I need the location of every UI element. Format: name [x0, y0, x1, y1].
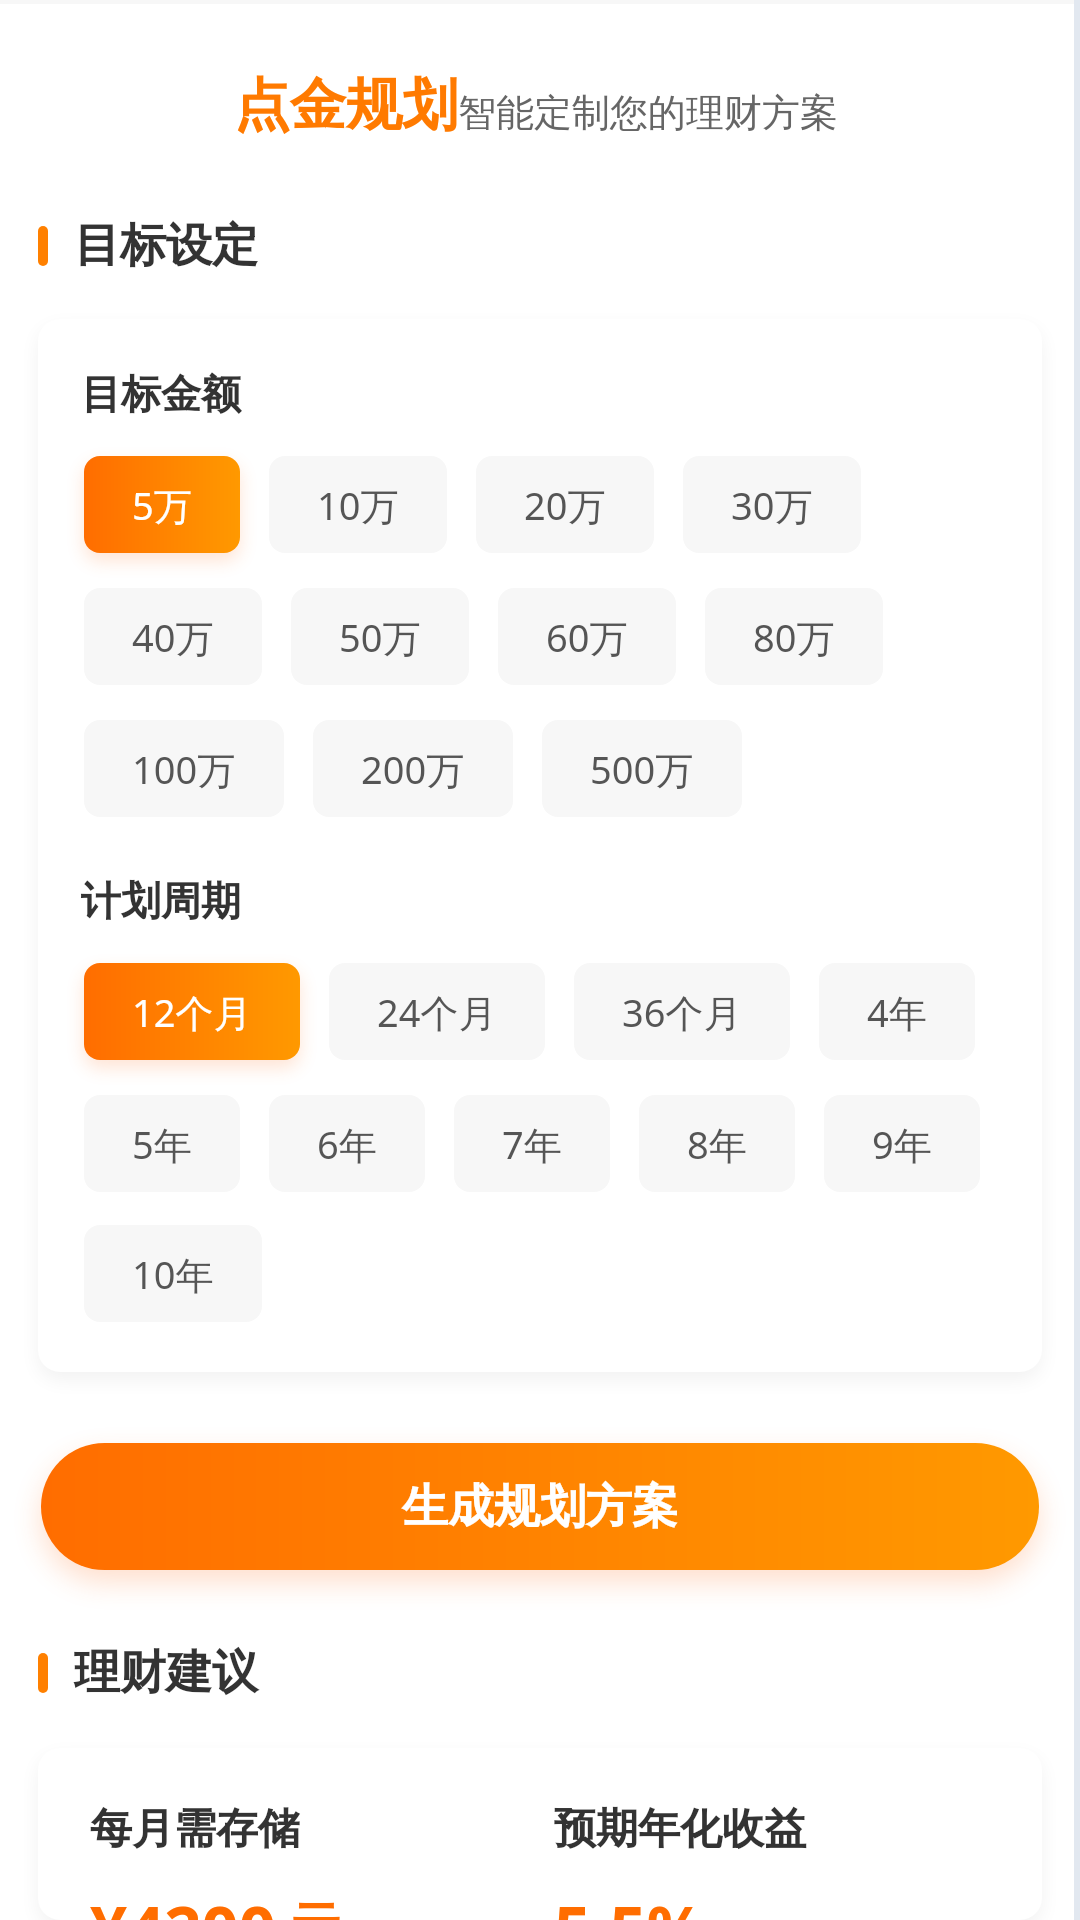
staticText: 每月需存储 — [90, 1803, 300, 1856]
button[interactable]: 5万 — [84, 456, 240, 553]
staticText: 10万 — [317, 479, 399, 531]
button[interactable]: 20万 — [476, 456, 654, 553]
button[interactable]: 80万 — [705, 588, 883, 685]
button[interactable]: 30万 — [683, 456, 861, 553]
staticText: 5万 — [132, 479, 192, 531]
staticText: ¥4200 — [90, 1884, 276, 1920]
staticText: 5年 — [132, 1118, 192, 1170]
button[interactable]: 500万 — [542, 720, 742, 817]
staticText: 5.5% — [554, 1884, 706, 1920]
staticText: 40万 — [132, 611, 214, 663]
button[interactable]: 生成规划方案 — [41, 1443, 1039, 1570]
button[interactable]: 5年 — [84, 1095, 240, 1192]
staticText: 80万 — [753, 611, 835, 663]
staticText: 24个月 — [377, 986, 497, 1038]
staticText: 10年 — [132, 1248, 214, 1300]
staticText: 8年 — [687, 1118, 747, 1170]
button[interactable]: 9年 — [824, 1095, 980, 1192]
button[interactable]: 36个月 — [574, 963, 790, 1060]
staticText: 7年 — [502, 1118, 562, 1170]
staticText: 目标金额 — [81, 369, 241, 419]
staticText: 20万 — [524, 479, 606, 531]
staticText: 生成规划方案 — [402, 1478, 678, 1536]
button[interactable]: 10万 — [269, 456, 447, 553]
button[interactable]: 10年 — [84, 1225, 262, 1322]
staticText: 9年 — [872, 1118, 932, 1170]
staticText: 预期年化收益 — [554, 1803, 806, 1856]
button[interactable]: 8年 — [639, 1095, 795, 1192]
button[interactable]: 24个月 — [329, 963, 545, 1060]
button[interactable]: 6年 — [269, 1095, 425, 1192]
staticText: 36个月 — [622, 986, 742, 1038]
staticText: 元 — [290, 1896, 341, 1920]
staticText: 500万 — [590, 743, 694, 795]
staticText: 30万 — [731, 479, 813, 531]
staticText: 点金规划 — [234, 70, 458, 141]
button[interactable]: 60万 — [498, 588, 676, 685]
staticText: 计划周期 — [81, 876, 241, 926]
staticText: 200万 — [361, 743, 465, 795]
button[interactable]: 4年 — [819, 963, 975, 1060]
staticText: 智能定制您的理财方案 — [458, 89, 838, 137]
staticText: 理财建议 — [74, 1644, 258, 1702]
staticText: 60万 — [546, 611, 628, 663]
button[interactable]: 12个月 — [84, 963, 300, 1060]
button[interactable]: 100万 — [84, 720, 284, 817]
staticText: 12个月 — [132, 986, 252, 1038]
staticText: 4年 — [867, 986, 927, 1038]
button[interactable]: 7年 — [454, 1095, 610, 1192]
button[interactable]: 50万 — [291, 588, 469, 685]
staticText: 100万 — [132, 743, 236, 795]
staticText: 6年 — [317, 1118, 377, 1170]
staticText: 目标设定 — [74, 217, 258, 275]
button[interactable]: 200万 — [313, 720, 513, 817]
staticText: 50万 — [339, 611, 421, 663]
button[interactable]: 40万 — [84, 588, 262, 685]
